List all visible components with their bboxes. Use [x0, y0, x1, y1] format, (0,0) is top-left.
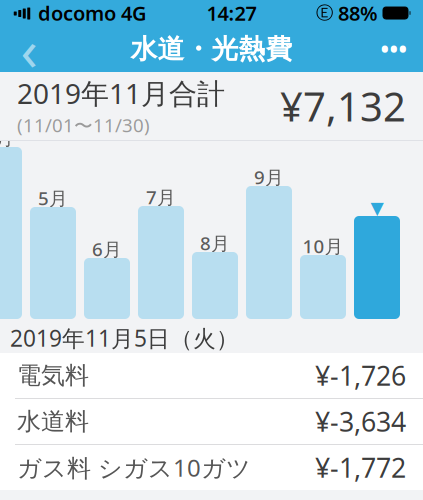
staticText: Ⓔ	[316, 2, 333, 24]
staticText: 2019年11月合計	[17, 74, 225, 112]
staticText: ¥7,132	[280, 79, 406, 132]
button[interactable]: 電気料	[0, 353, 423, 398]
staticText: •••	[380, 34, 407, 64]
staticText: ▼	[370, 198, 383, 218]
staticText: 水道・光熱費	[130, 33, 292, 65]
staticText: 10月	[302, 234, 343, 258]
staticText: ¥-1,772	[315, 450, 406, 485]
staticText: 14:27	[206, 0, 256, 26]
staticText: 8月	[200, 231, 230, 255]
staticText: 6月	[92, 237, 122, 261]
button[interactable]: More options	[371, 26, 417, 72]
staticText: 2019年11月5日（火）	[10, 323, 239, 353]
staticText: 9月	[254, 165, 284, 189]
staticText: ‹	[20, 12, 37, 86]
staticText: 電気料	[17, 361, 89, 390]
staticText: ¥-1,726	[315, 358, 406, 393]
staticText: 水道料	[17, 407, 89, 436]
staticText: ガス料 シガス10ガツ	[17, 452, 251, 483]
button[interactable]: Back	[6, 26, 52, 72]
staticText: ¥-3,634	[315, 404, 406, 439]
staticText: 7月	[146, 185, 176, 209]
staticText: 88%	[338, 0, 378, 26]
staticText: 4月	[0, 126, 14, 150]
button[interactable]: ガス料 シガス10ガツ	[0, 444, 423, 490]
staticText: (11/01〜11/30)	[17, 113, 150, 137]
staticText: docomo 4G	[38, 0, 147, 26]
staticText: 5月	[38, 186, 68, 210]
button[interactable]: 水道料	[0, 398, 423, 444]
